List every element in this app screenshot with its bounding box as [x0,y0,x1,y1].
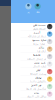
staticText: شكرا جزيلا [33,42,45,45]
staticText: يوسف [34,75,41,79]
button[interactable]: سعد [34,3,41,13]
button[interactable]: نور الدين [11,83,55,90]
staticText: كيف الحال [33,64,46,68]
staticText: سأتصل بك لاحقا [26,87,46,90]
staticText: فاطمة [33,53,40,57]
staticText: بالتوفيق دائما [30,79,46,83]
staticText: خالد [38,45,44,49]
button[interactable]: يوسف [11,75,55,83]
staticText: سارة محمود [32,38,46,42]
staticText: تمام إن شاء الله [28,34,46,38]
staticText: تم إرسال الملف [27,57,46,60]
button[interactable]: ريم [25,3,31,13]
staticText: عمر حسن [34,60,45,64]
staticText: سعد [36,10,40,13]
staticText: أحمد [33,30,40,34]
button[interactable]: ليلى [11,68,55,75]
button[interactable]: أحمد [11,30,55,38]
staticText: السلام عليكم [33,27,46,30]
staticText: محمد علي [33,23,46,27]
staticText: مريم [33,90,39,94]
button[interactable]: سارة محمود [11,38,55,45]
button[interactable]: خالد [11,45,55,53]
button[interactable]: عمر حسن [11,60,55,68]
button[interactable]: مريم [11,90,55,98]
staticText: نور الدين [30,83,41,87]
button[interactable]: محمد علي [11,23,55,30]
staticText: ريم [27,10,30,13]
button[interactable]: فاطمة [11,53,55,60]
staticText: وصلت الرسالة [30,72,46,75]
staticText: ليلى [35,68,40,72]
staticText: أراك غدا [37,49,46,53]
staticText: موافق على الموعد [27,94,46,98]
